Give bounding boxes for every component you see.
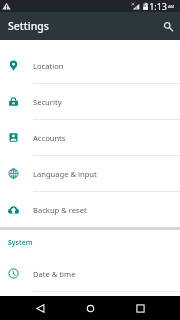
button[interactable]: Security [0,84,180,119]
staticText: Backup & reset [33,205,87,215]
button[interactable]: Recents [125,296,155,320]
staticText: Location [33,61,64,71]
button[interactable]: Accounts [0,120,180,155]
staticText: AM [168,4,175,9]
button[interactable]: Date & time [0,256,180,291]
button[interactable]: Home [75,296,105,320]
button[interactable]: Backup & reset [0,192,180,227]
staticText: 11:13 [144,0,168,12]
staticText: System [8,238,33,248]
staticText: Language & input [33,169,97,179]
button[interactable]: Location [0,48,180,83]
staticText: Accounts [33,133,66,143]
staticText: Settings [8,19,49,33]
button[interactable]: Back [25,296,55,320]
staticText: Date & time [33,269,76,279]
button[interactable]: Language & input [0,156,180,191]
button[interactable]: Search [158,16,178,36]
staticText: Security [33,97,62,107]
